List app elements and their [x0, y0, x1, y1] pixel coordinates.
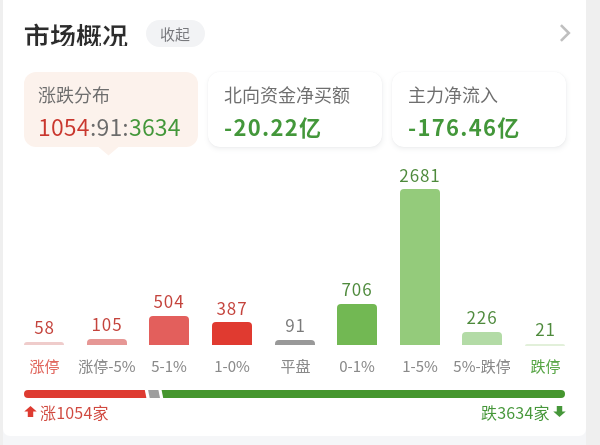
- staticText: 2681: [399, 162, 441, 187]
- staticText: 涨1054家: [40, 400, 109, 422]
- staticText: 主力净流入: [408, 81, 498, 107]
- staticText: 504: [153, 288, 185, 313]
- staticText: 北向资金净买额: [224, 81, 350, 107]
- button[interactable]: 主力净流入: [392, 72, 566, 147]
- staticText: 涨停-5%: [78, 355, 136, 377]
- button[interactable]: 涨1054家: [24, 400, 109, 422]
- staticText: 涨跌分布: [38, 81, 110, 107]
- staticText: 0-1%: [339, 355, 375, 377]
- staticText: 226: [466, 304, 498, 329]
- staticText: 387: [216, 295, 248, 320]
- staticText: 91: [285, 312, 306, 337]
- staticText: 涨停: [29, 355, 60, 377]
- staticText: 3634: [129, 109, 181, 142]
- staticText: 21: [535, 316, 556, 341]
- button[interactable]: 收起: [146, 20, 205, 47]
- button[interactable]: 跌3634家: [466, 400, 566, 422]
- staticText: -20.22亿: [224, 110, 323, 142]
- staticText: 1-0%: [214, 355, 250, 377]
- staticText: :91:: [90, 109, 129, 142]
- staticText: 1054: [38, 109, 90, 142]
- staticText: -176.46亿: [408, 110, 521, 142]
- staticText: 5%-跌停: [453, 355, 511, 377]
- button[interactable]: 北向资金净买额: [208, 72, 382, 147]
- staticText: 1-5%: [402, 355, 438, 377]
- staticText: 平盘: [280, 355, 311, 377]
- staticText: 58: [34, 314, 55, 339]
- staticText: 5-1%: [151, 355, 187, 377]
- staticText: 市场概况: [24, 16, 129, 46]
- button[interactable]: 涨跌分布: [24, 72, 198, 147]
- staticText: 跌停: [530, 355, 561, 377]
- staticText: 跌3634家: [481, 400, 550, 422]
- staticText: 105: [91, 311, 123, 336]
- staticText: 收起: [160, 23, 191, 45]
- button[interactable]: 查看更多: [546, 14, 584, 52]
- staticText: 706: [341, 276, 373, 301]
